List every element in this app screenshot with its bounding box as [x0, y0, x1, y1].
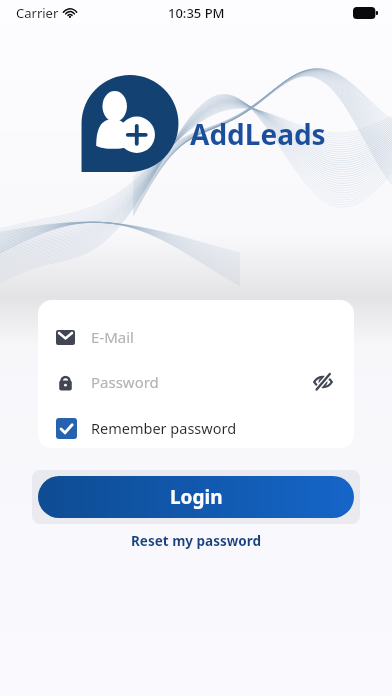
staticText: 10:35 PM — [168, 4, 225, 22]
button[interactable]: Reset my password — [119, 528, 273, 554]
staticText: Reset my password — [131, 532, 261, 550]
button[interactable]: Show password — [310, 369, 336, 395]
button[interactable]: Remember password — [38, 411, 354, 445]
staticText: AddLeads — [190, 115, 326, 153]
staticText: E-Mail — [91, 327, 134, 347]
staticText: Password — [91, 372, 159, 392]
button[interactable]: Password — [38, 365, 354, 399]
staticText: Login — [170, 484, 223, 510]
button[interactable]: Login — [38, 476, 354, 518]
staticText: Carrier — [16, 4, 59, 22]
button[interactable]: E-Mail — [38, 320, 354, 354]
staticText: Remember password — [91, 418, 237, 438]
